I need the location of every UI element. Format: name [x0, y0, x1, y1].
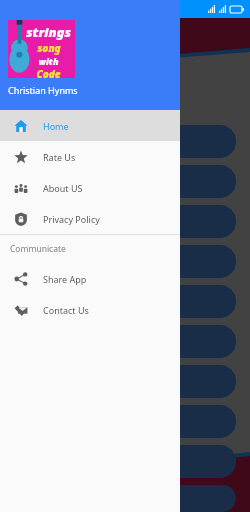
- staticText: Rate Us: [43, 151, 76, 163]
- button[interactable]: Rate Us: [0, 141, 180, 172]
- staticText: Communicate: [10, 243, 66, 255]
- button[interactable]: Home: [0, 110, 180, 141]
- staticText: song: [37, 41, 61, 55]
- staticText: with: [38, 55, 59, 67]
- button[interactable]: [10, 445, 236, 478]
- button[interactable]: [10, 165, 236, 198]
- button[interactable]: [10, 325, 236, 358]
- staticText: Code: [36, 67, 61, 78]
- staticText: About US: [43, 182, 83, 194]
- staticText: Share App: [43, 273, 87, 285]
- button[interactable]: [10, 205, 236, 238]
- button[interactable]: [10, 285, 236, 318]
- staticText: Contact Us: [43, 304, 89, 316]
- button[interactable]: [10, 245, 236, 278]
- button[interactable]: Privacy Policy: [0, 203, 180, 234]
- button[interactable]: [10, 485, 236, 512]
- button[interactable]: About US: [0, 172, 180, 203]
- button[interactable]: [10, 125, 236, 158]
- button[interactable]: [10, 405, 236, 438]
- staticText: strings: [26, 23, 71, 41]
- button[interactable]: Share App: [0, 263, 180, 294]
- button[interactable]: Contact Us: [0, 294, 180, 325]
- staticText: Privacy Policy: [43, 213, 100, 225]
- staticText: Christian Hynms: [8, 84, 78, 96]
- button[interactable]: [10, 365, 236, 398]
- staticText: Home: [43, 120, 69, 132]
